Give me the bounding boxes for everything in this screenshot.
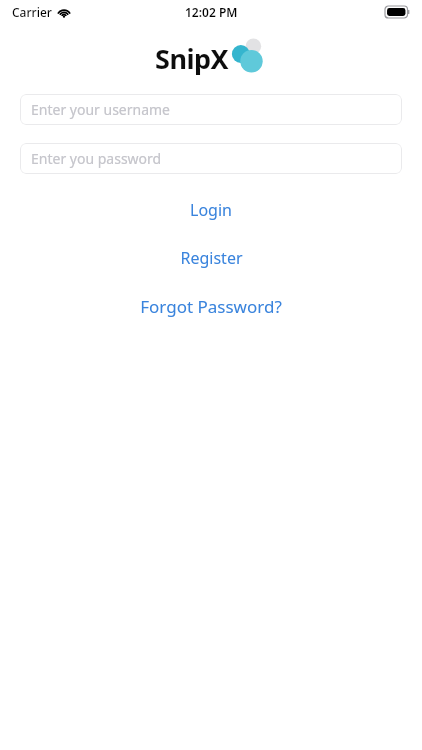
staticText: Enter your username (31, 100, 171, 119)
staticText: Carrier (12, 4, 52, 20)
staticText: SnipX (155, 40, 229, 77)
button[interactable]: Enter you password (20, 143, 402, 174)
button[interactable]: Enter your username (20, 94, 402, 125)
button[interactable]: Forgot Password? (0, 290, 422, 322)
button[interactable]: Register (0, 242, 422, 274)
staticText: Login (190, 199, 232, 221)
staticText: Register (180, 247, 243, 269)
staticText: Forgot Password? (140, 295, 282, 318)
staticText: Enter you password (31, 149, 162, 168)
staticText: 12:02 PM (185, 4, 238, 20)
button[interactable]: Login (0, 194, 422, 226)
